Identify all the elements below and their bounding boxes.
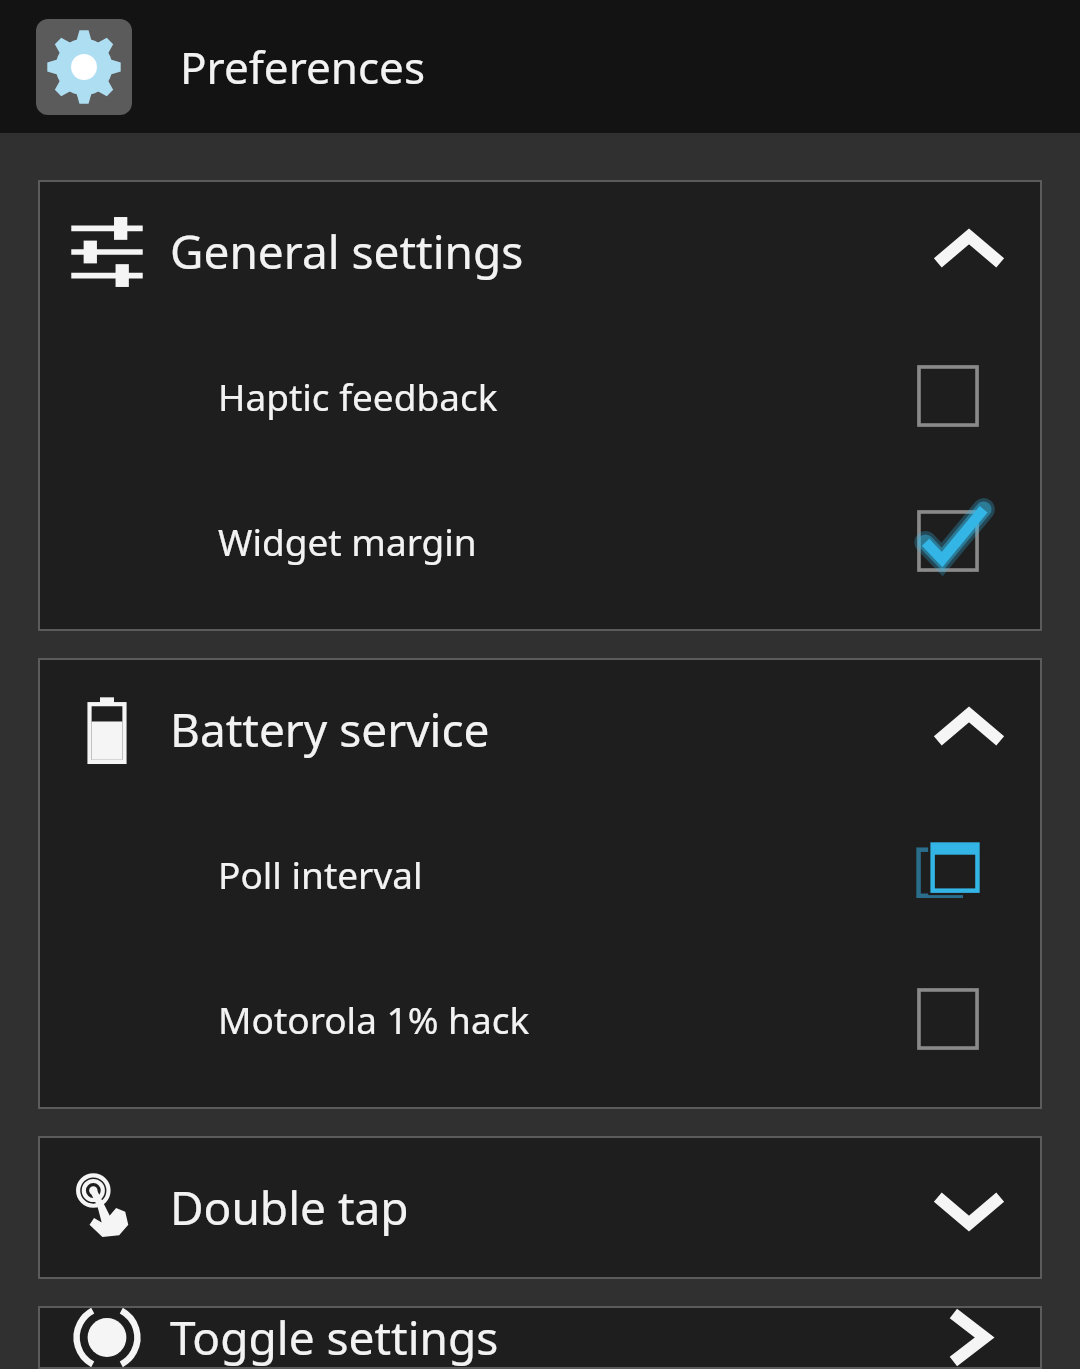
button[interactable]: Double tap	[38, 1136, 1042, 1279]
other: Open dialog	[912, 838, 984, 910]
staticText: Battery service	[170, 698, 490, 761]
other: Expand	[926, 1165, 1012, 1251]
staticText: General settings	[170, 220, 524, 283]
staticText: Poll interval	[218, 849, 423, 899]
staticText: Preferences	[180, 37, 425, 97]
staticText: Haptic feedback	[218, 371, 498, 421]
other: Collapse	[926, 687, 1012, 773]
staticText: Toggle settings	[170, 1306, 499, 1369]
staticText: Motorola 1% hack	[218, 994, 530, 1044]
button[interactable]: General settings	[38, 180, 1042, 323]
button[interactable]: Haptic feedback	[38, 323, 1042, 468]
button[interactable]: Poll interval	[38, 801, 1042, 946]
button[interactable]: Widget margin	[38, 468, 1042, 613]
button[interactable]: Battery service	[38, 658, 1042, 801]
button[interactable]: Motorola 1% hack	[38, 946, 1042, 1091]
staticText: Widget margin	[218, 516, 477, 566]
button[interactable]: Toggle settings	[38, 1306, 1042, 1369]
button[interactable]: Preferences	[0, 0, 1080, 133]
other: Collapse	[926, 209, 1012, 295]
staticText: Double tap	[170, 1176, 409, 1239]
other: Open	[926, 1306, 1012, 1369]
